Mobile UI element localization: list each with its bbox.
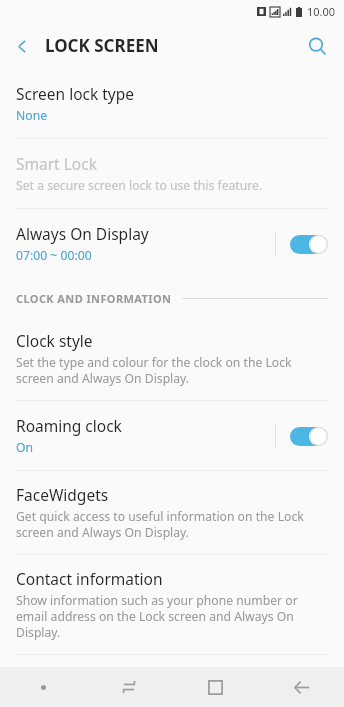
staticText: Smart Lock (16, 153, 97, 174)
staticText: CLOCK AND INFORMATION (16, 291, 172, 306)
button[interactable]: Contact information (0, 555, 344, 654)
button[interactable]: Smart Lock (0, 139, 344, 208)
button[interactable]: Recents (86, 667, 172, 707)
staticText: 07:00 ~ 00:00 (16, 247, 92, 264)
staticText: Get quick access to useful information o… (16, 508, 330, 540)
staticText: On (16, 439, 34, 456)
staticText: None (16, 107, 48, 124)
button[interactable]: Roaming clock (0, 401, 344, 470)
button[interactable]: Toggle Roaming clock (290, 424, 330, 448)
staticText: Set a secure screen lock to use this fea… (16, 177, 263, 194)
button[interactable]: Back (0, 24, 44, 68)
staticText: Contact information (16, 568, 163, 589)
staticText: Roaming clock (16, 415, 122, 436)
staticText: Screen lock type (16, 83, 135, 104)
button[interactable]: Always On Display (0, 209, 344, 278)
staticText: 10.00 (307, 4, 336, 19)
button[interactable]: FaceWidgets (0, 471, 344, 554)
button[interactable]: Clock style (0, 318, 344, 400)
button[interactable]: Toggle Always On Display (290, 232, 330, 256)
staticText: Show information such as your phone numb… (16, 592, 330, 640)
button[interactable]: Screen lock type (0, 69, 344, 138)
staticText: Always On Display (16, 223, 149, 244)
button[interactable]: Home (172, 667, 258, 707)
staticText: LOCK SCREEN (45, 34, 159, 57)
button[interactable]: Search (296, 25, 338, 67)
staticText: FaceWidgets (16, 484, 109, 505)
button[interactable]: Back (258, 667, 344, 707)
staticText: Set the type and colour for the clock on… (16, 354, 330, 386)
staticText: Clock style (16, 330, 93, 351)
